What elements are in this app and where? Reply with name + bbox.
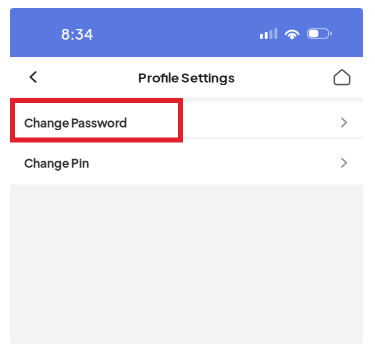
button[interactable]: Change Password (10, 102, 363, 137)
button[interactable]: Home (323, 57, 361, 97)
staticText: Profile Settings (138, 69, 235, 85)
button[interactable]: Change Pin (10, 139, 363, 184)
staticText: Change Password (24, 115, 127, 130)
staticText: 8:34 (61, 25, 93, 43)
button[interactable]: Back (14, 57, 52, 97)
staticText: Change Pin (24, 155, 89, 170)
